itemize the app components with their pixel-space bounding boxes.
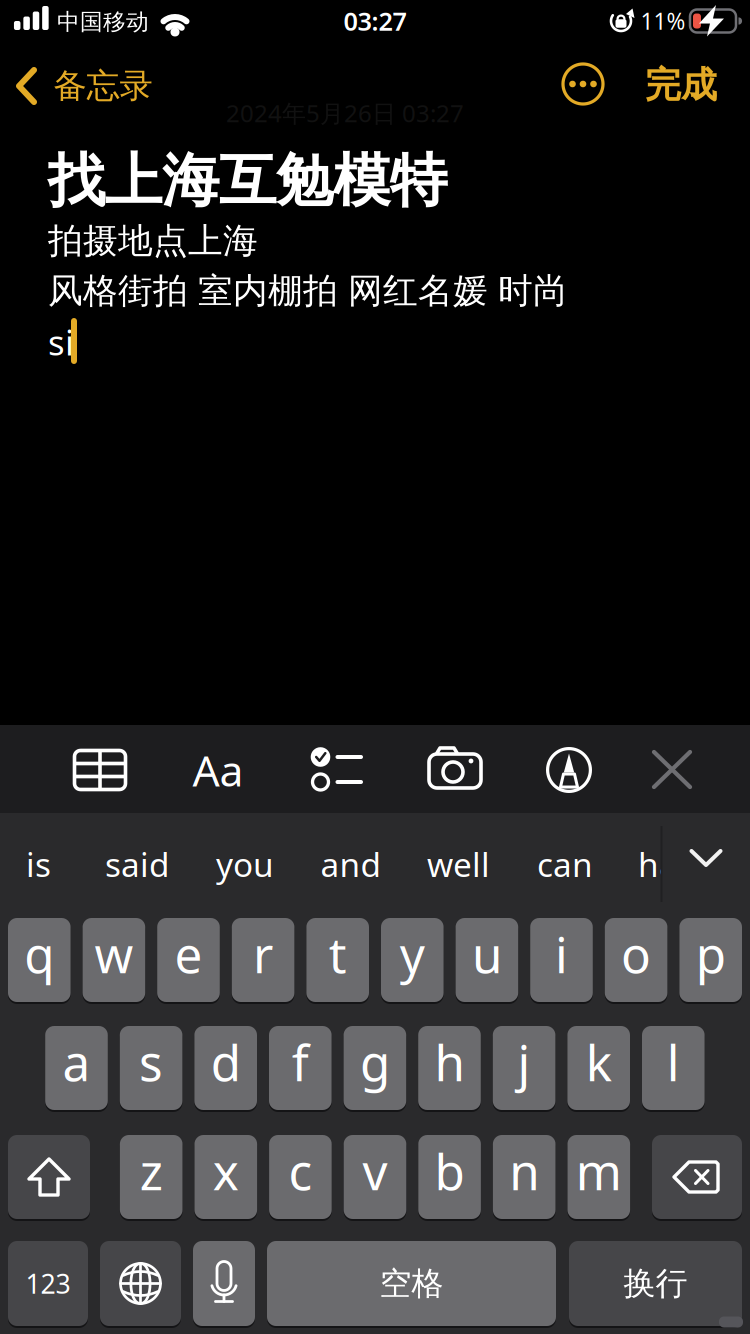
button[interactable]: j bbox=[493, 1025, 555, 1111]
button[interactable]: 完成 bbox=[636, 63, 726, 107]
button[interactable]: 空格 bbox=[267, 1240, 556, 1327]
button[interactable]: x bbox=[194, 1134, 257, 1220]
button[interactable]: Insert photo bbox=[418, 737, 490, 803]
staticText: n bbox=[509, 1138, 539, 1204]
button[interactable]: h bbox=[418, 1025, 481, 1111]
staticText: well bbox=[427, 842, 490, 886]
staticText: f bbox=[292, 1029, 309, 1095]
staticText: w bbox=[94, 921, 133, 987]
staticText: a bbox=[62, 1029, 90, 1095]
staticText: j bbox=[518, 1029, 531, 1095]
button[interactable]: y bbox=[381, 917, 444, 1003]
button[interactable]: w bbox=[83, 917, 145, 1003]
button[interactable]: z bbox=[120, 1134, 182, 1220]
staticText: 空格 bbox=[379, 1264, 443, 1303]
staticText: c bbox=[288, 1138, 312, 1204]
button[interactable]: e bbox=[157, 917, 220, 1003]
button[interactable]: Numbers bbox=[8, 1240, 88, 1327]
staticText: Aa bbox=[192, 742, 243, 798]
staticText: r bbox=[253, 921, 273, 987]
button[interactable]: a bbox=[45, 1025, 108, 1111]
staticText: x bbox=[213, 1138, 239, 1204]
staticText: m bbox=[576, 1138, 622, 1204]
button[interactable]: f bbox=[269, 1025, 332, 1111]
staticText: i bbox=[555, 921, 568, 987]
staticText: si bbox=[48, 319, 74, 365]
button[interactable]: you bbox=[216, 819, 274, 909]
button[interactable]: well bbox=[427, 819, 490, 909]
staticText: ha bbox=[638, 842, 678, 886]
button[interactable]: n bbox=[493, 1134, 555, 1220]
button[interactable]: g bbox=[344, 1025, 406, 1111]
staticText: 风格街拍 室内棚拍 网红名媛 时尚 bbox=[48, 270, 568, 312]
staticText: 2024年5月26日 03:27 bbox=[226, 97, 464, 129]
staticText: l bbox=[667, 1029, 680, 1095]
button[interactable]: is bbox=[26, 819, 51, 909]
button[interactable]: Shift bbox=[8, 1134, 90, 1220]
button[interactable]: Insert table bbox=[64, 737, 136, 803]
button[interactable]: Markup bbox=[533, 737, 605, 803]
button[interactable]: More bbox=[561, 62, 605, 106]
button[interactable]: Checklist bbox=[301, 737, 373, 803]
staticText: h bbox=[434, 1029, 464, 1095]
button[interactable]: l bbox=[642, 1025, 705, 1111]
staticText: o bbox=[621, 921, 651, 987]
staticText: g bbox=[360, 1029, 390, 1095]
staticText: e bbox=[174, 921, 202, 987]
button[interactable]: d bbox=[194, 1025, 257, 1111]
button[interactable]: v bbox=[344, 1134, 406, 1220]
button[interactable]: Delete bbox=[652, 1134, 742, 1220]
button[interactable]: Formatting bbox=[183, 740, 253, 800]
button[interactable]: t bbox=[306, 917, 369, 1003]
staticText: z bbox=[140, 1138, 163, 1204]
staticText: 备忘录 bbox=[53, 65, 152, 106]
staticText: 03:27 bbox=[343, 4, 406, 38]
button[interactable]: Dictation bbox=[193, 1240, 255, 1327]
button[interactable]: i bbox=[530, 917, 593, 1003]
staticText: q bbox=[24, 921, 54, 987]
staticText: 123 bbox=[25, 1266, 70, 1301]
staticText: p bbox=[696, 921, 726, 987]
staticText: b bbox=[435, 1138, 465, 1204]
button[interactable]: and bbox=[320, 819, 381, 909]
button[interactable]: 备忘录 bbox=[10, 64, 170, 108]
staticText: can bbox=[537, 842, 593, 886]
button[interactable]: r bbox=[232, 917, 294, 1003]
button[interactable]: m bbox=[567, 1134, 630, 1220]
button[interactable]: can bbox=[537, 819, 593, 909]
staticText: 找上海互勉模特 bbox=[48, 146, 447, 216]
button[interactable]: o bbox=[605, 917, 667, 1003]
button[interactable]: Hide predictions bbox=[689, 849, 722, 867]
staticText: 11% bbox=[640, 6, 685, 36]
button[interactable]: Next keyboard bbox=[100, 1240, 181, 1327]
button[interactable]: Close bbox=[636, 737, 708, 803]
staticText: 换行 bbox=[623, 1264, 687, 1303]
button[interactable]: k bbox=[567, 1025, 630, 1111]
button[interactable]: said bbox=[105, 819, 170, 909]
staticText: 中国移动 bbox=[57, 8, 149, 36]
staticText: v bbox=[362, 1138, 387, 1204]
button[interactable]: c bbox=[269, 1134, 332, 1220]
staticText: s bbox=[139, 1029, 163, 1095]
staticText: you bbox=[216, 842, 274, 886]
button[interactable]: s bbox=[120, 1025, 182, 1111]
staticText: and bbox=[320, 842, 381, 886]
staticText: d bbox=[211, 1029, 241, 1095]
staticText: k bbox=[586, 1029, 612, 1095]
button[interactable]: q bbox=[8, 917, 71, 1003]
staticText: t bbox=[329, 921, 347, 987]
button[interactable]: u bbox=[456, 917, 518, 1003]
staticText: said bbox=[105, 842, 170, 886]
button[interactable]: b bbox=[418, 1134, 481, 1220]
staticText: u bbox=[472, 921, 502, 987]
staticText: is bbox=[26, 842, 51, 886]
button[interactable]: p bbox=[679, 917, 742, 1003]
staticText: y bbox=[400, 921, 425, 987]
button[interactable]: 换行 bbox=[569, 1240, 742, 1327]
staticText: 完成 bbox=[645, 63, 717, 107]
staticText: 拍摄地点上海 bbox=[48, 220, 258, 262]
